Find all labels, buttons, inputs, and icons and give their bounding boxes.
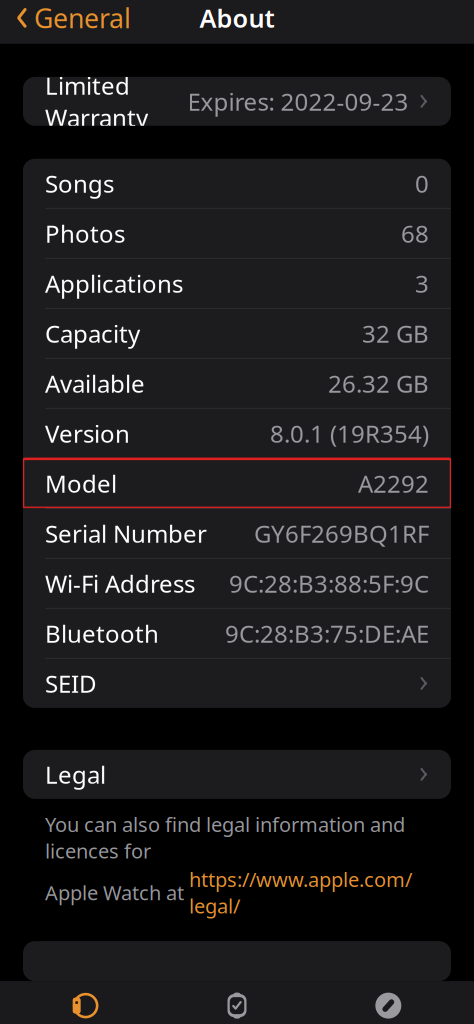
staticText: Apple Watch at: [45, 879, 189, 906]
staticText: A2292: [358, 467, 429, 499]
staticText: Photos: [45, 217, 125, 249]
button[interactable]: Face Gallery: [161, 984, 313, 1024]
button[interactable]: https://www.apple.com/legal/: [189, 866, 412, 919]
button[interactable]: Model: [23, 459, 451, 508]
staticText: 9C:28:B3:88:5F:9C: [229, 567, 429, 599]
staticText: 32 GB: [362, 317, 429, 349]
staticText: Serial Number: [45, 517, 207, 549]
staticText: General: [34, 0, 131, 36]
button[interactable]: Limited Warranty: [23, 77, 451, 126]
button[interactable]: Version: [23, 409, 451, 458]
button[interactable]: My Watch: [10, 984, 161, 1024]
button[interactable]: Discover: [313, 984, 464, 1024]
button[interactable]: Photos: [23, 209, 451, 258]
staticText: Limited Warranty: [45, 69, 148, 133]
staticText: Bluetooth: [45, 617, 159, 649]
button[interactable]: Capacity: [23, 309, 451, 358]
button[interactable]: Legal: [23, 750, 451, 799]
staticText: 26.32 GB: [328, 367, 429, 399]
button[interactable]: Available: [23, 359, 451, 408]
staticText: 3: [415, 267, 429, 299]
staticText: Model: [45, 467, 117, 499]
staticText: Applications: [45, 267, 183, 299]
staticText: Capacity: [45, 317, 140, 349]
button[interactable]: General: [4, 0, 143, 44]
staticText: 68: [401, 217, 429, 249]
button[interactable]: Songs: [23, 159, 451, 208]
staticText: Expires: 2022-09-23: [187, 85, 408, 117]
button[interactable]: SEID: [23, 659, 451, 708]
staticText: Wi-Fi Address: [45, 567, 195, 599]
staticText: 9C:28:B3:75:DE:AE: [225, 617, 429, 649]
staticText: About: [199, 1, 274, 35]
button[interactable]: Wi-Fi Address: [23, 559, 451, 608]
button[interactable]: Serial Number: [23, 509, 451, 558]
staticText: SEID: [45, 667, 97, 699]
staticText: You can also find legal information and …: [45, 811, 405, 864]
staticText: 0: [415, 167, 429, 199]
staticText: GY6F269BQ1RF: [254, 517, 429, 549]
staticText: https://www.apple.com/legal/: [189, 866, 412, 919]
staticText: Version: [45, 417, 130, 449]
button[interactable]: Applications: [23, 259, 451, 308]
button[interactable]: Bluetooth: [23, 609, 451, 658]
staticText: Legal: [45, 758, 106, 790]
staticText: Available: [45, 367, 145, 399]
staticText: 8.0.1 (19R354): [270, 417, 429, 449]
staticText: Songs: [45, 167, 114, 199]
